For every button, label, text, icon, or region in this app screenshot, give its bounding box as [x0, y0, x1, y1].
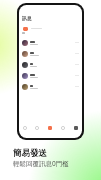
button[interactable]: Messages — [43, 122, 56, 133]
button[interactable] — [19, 48, 82, 59]
button[interactable] — [19, 70, 82, 81]
button[interactable] — [19, 25, 82, 32]
button[interactable]: Profile — [69, 122, 82, 133]
staticText: 訊息 — [22, 15, 32, 21]
staticText: 簡易發送 — [13, 148, 47, 159]
button[interactable] — [19, 59, 82, 70]
button[interactable] — [19, 81, 82, 92]
staticText: 輕鬆回覆訊息0門檻 — [13, 159, 69, 168]
button[interactable] — [19, 37, 82, 48]
button[interactable]: Discover — [31, 122, 43, 133]
button[interactable]: Notifications — [56, 122, 69, 133]
button[interactable]: Home — [19, 122, 31, 133]
